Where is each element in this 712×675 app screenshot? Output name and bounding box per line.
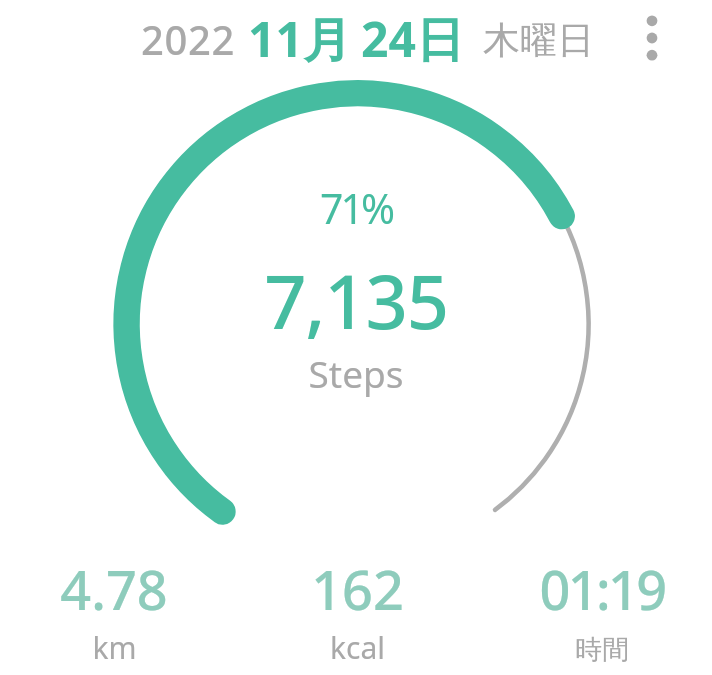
button[interactable]: More options: [628, 0, 676, 76]
staticText: 2022: [141, 12, 235, 66]
staticText: Steps: [0, 348, 712, 398]
staticText: 木曜日: [483, 17, 594, 64]
staticText: 162: [311, 552, 404, 626]
staticText: 71%: [0, 180, 712, 236]
staticText: 01:19: [539, 552, 665, 626]
staticText: 時間: [575, 633, 629, 667]
button[interactable]: 2022: [141, 0, 594, 76]
staticText: km: [92, 627, 137, 668]
staticText: 7,135: [0, 250, 712, 351]
staticText: 4.78: [60, 552, 168, 626]
staticText: kcal: [330, 627, 385, 668]
staticText: 11月: [248, 6, 351, 72]
button[interactable]: 4.78: [0, 552, 228, 668]
button[interactable]: 162: [243, 552, 471, 668]
button[interactable]: 01:19: [488, 552, 712, 667]
staticText: 24日: [361, 6, 464, 72]
